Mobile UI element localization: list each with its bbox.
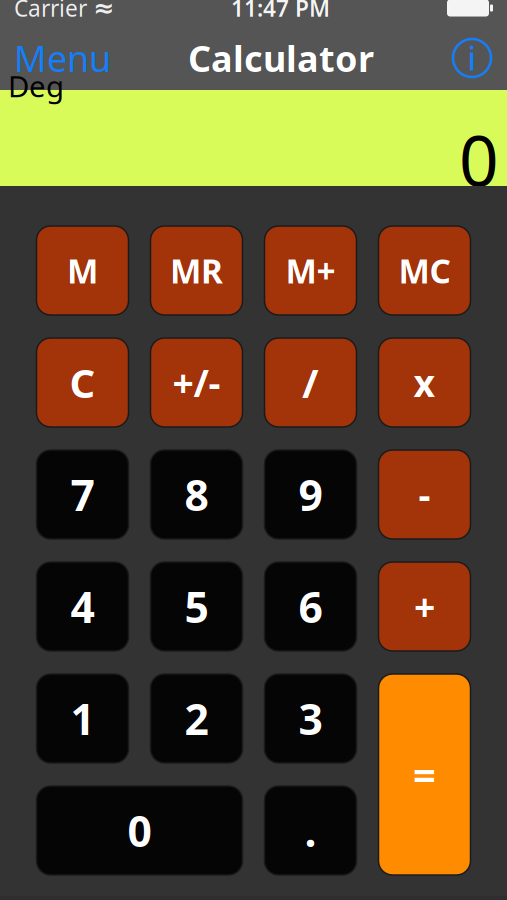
staticText: +/- — [172, 358, 220, 407]
staticText: 6 — [298, 578, 322, 635]
button[interactable]: 8 — [150, 450, 242, 539]
staticText: 0 — [459, 113, 499, 205]
staticText: 7 — [70, 466, 94, 523]
staticText: 5 — [184, 578, 208, 635]
button[interactable]: Info — [437, 26, 507, 90]
button[interactable]: +/- — [150, 338, 242, 427]
staticText: 4 — [70, 578, 94, 635]
button[interactable]: 7 — [36, 450, 128, 539]
button[interactable]: MR — [150, 226, 242, 315]
button[interactable]: = — [378, 674, 470, 875]
staticText: / — [302, 356, 319, 409]
button[interactable]: 6 — [264, 562, 356, 651]
staticText: 8 — [184, 466, 208, 523]
staticText: Menu — [14, 34, 111, 82]
staticText: M — [67, 248, 98, 293]
staticText: Carrier — [14, 0, 87, 23]
staticText: 9 — [298, 466, 322, 523]
button[interactable]: 2 — [150, 674, 242, 763]
button[interactable]: 9 — [264, 450, 356, 539]
staticText: + — [414, 582, 435, 631]
staticText: x — [413, 358, 435, 407]
button[interactable]: / — [264, 338, 356, 427]
button[interactable]: 4 — [36, 562, 128, 651]
button[interactable]: - — [378, 450, 470, 539]
staticText: 0 — [127, 802, 151, 859]
button[interactable]: C — [36, 338, 128, 427]
staticText: 1 — [70, 690, 94, 747]
button[interactable]: 5 — [150, 562, 242, 651]
staticText: MC — [398, 248, 450, 293]
staticText: 11:47 PM — [231, 0, 330, 23]
staticText: = — [413, 748, 436, 801]
staticText: M+ — [285, 248, 335, 293]
button[interactable]: Menu — [0, 26, 125, 90]
staticText: 3 — [298, 690, 322, 747]
button[interactable]: 0 — [36, 786, 242, 875]
button[interactable]: MC — [378, 226, 470, 315]
button[interactable]: + — [378, 562, 470, 651]
staticText: Deg — [8, 66, 64, 105]
staticText: 2 — [184, 690, 208, 747]
button[interactable]: M — [36, 226, 128, 315]
staticText: Calculator — [188, 34, 374, 82]
button[interactable]: M+ — [264, 226, 356, 315]
button[interactable]: 3 — [264, 674, 356, 763]
button[interactable]: . — [264, 786, 356, 875]
button[interactable]: x — [378, 338, 470, 427]
staticText: ≈ — [93, 0, 114, 22]
staticText: MR — [170, 248, 223, 293]
staticText: C — [69, 356, 95, 409]
staticText: - — [418, 470, 430, 519]
button[interactable]: 1 — [36, 674, 128, 763]
staticText: i — [467, 37, 476, 79]
staticText: . — [304, 802, 316, 859]
